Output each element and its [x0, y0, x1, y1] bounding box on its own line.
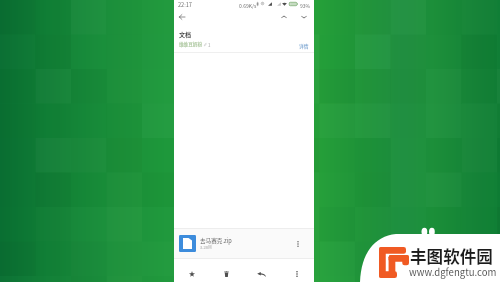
staticText: www.dgfengtu.com: [409, 265, 497, 279]
button[interactable]: Previous message: [277, 10, 290, 23]
staticText: 1: [208, 42, 211, 48]
staticText: 22:17: [178, 1, 192, 9]
button[interactable]: More options: [291, 237, 304, 250]
button[interactable]: Star: [174, 259, 209, 282]
staticText: 3.28M: [200, 244, 212, 250]
button[interactable]: Back: [175, 10, 188, 23]
button[interactable]: More: [279, 259, 314, 282]
staticText: 详情: [299, 42, 309, 49]
staticText: 丰图软件园: [410, 244, 493, 268]
button[interactable]: 详情: [297, 40, 311, 51]
staticText: 0.69K/s: [239, 2, 257, 9]
staticText: 文档: [179, 30, 192, 39]
staticText: 去马赛克.zip: [200, 237, 232, 245]
button[interactable]: Reply: [244, 259, 279, 282]
button[interactable]: Delete: [209, 259, 244, 282]
staticText: 93%: [300, 2, 311, 9]
button[interactable]: Next message: [297, 10, 310, 23]
staticText: 维维豆奶粉: [179, 41, 202, 48]
button[interactable]: 去马赛克.zip: [174, 229, 314, 258]
